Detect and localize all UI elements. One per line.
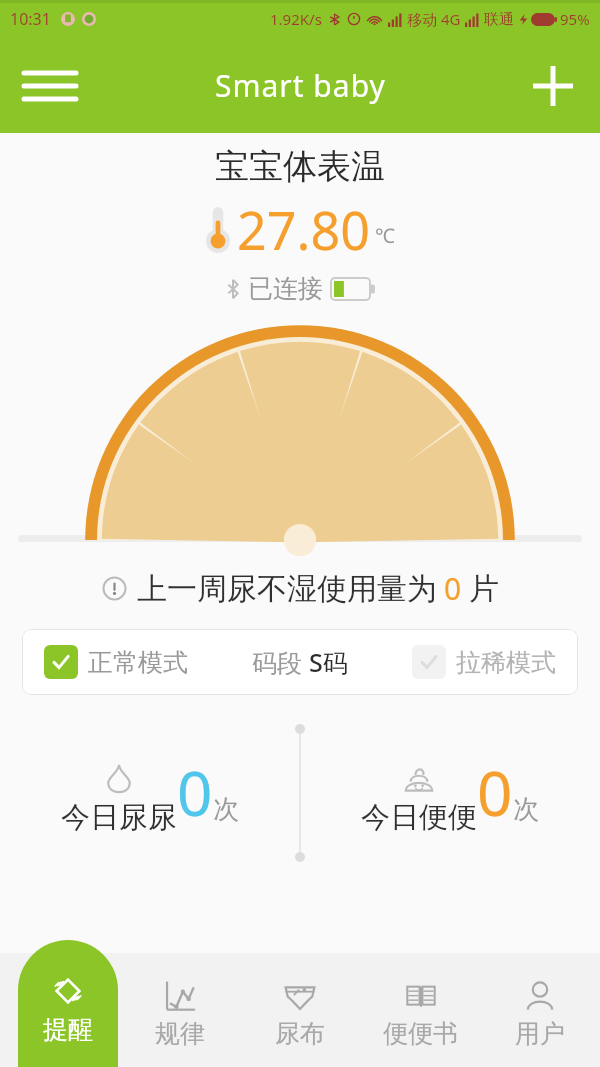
button[interactable]: 规律 [120, 953, 240, 1067]
staticText: 规律 [155, 1018, 205, 1049]
staticText: 联通 [484, 10, 514, 29]
staticText: 拉稀模式 [456, 647, 556, 678]
button[interactable]: 正常模式 [44, 645, 188, 679]
staticText: 移动 4G [407, 9, 461, 29]
staticText: 用户 [515, 1018, 565, 1049]
staticText: 今日便便 [361, 799, 477, 836]
staticText: 宝宝体表温 [215, 145, 385, 188]
staticText: 尿布 [275, 1018, 325, 1049]
staticText: 1.92K/s [270, 9, 322, 29]
staticText: 正常模式 [88, 647, 188, 678]
staticText: ℃ [375, 222, 395, 249]
staticText: 27.80 [237, 194, 370, 265]
button[interactable]: 拉稀模式 [412, 645, 556, 679]
staticText: 码段 [252, 645, 309, 679]
staticText: 上一周尿不湿使用量为 [137, 570, 437, 608]
staticText: 95% [560, 9, 590, 29]
button[interactable]: Add [522, 55, 584, 117]
button[interactable]: 便便书 [360, 953, 480, 1067]
button[interactable]: 尿布 [240, 953, 360, 1067]
staticText: S码 [309, 645, 348, 679]
button[interactable]: 今日便便 [300, 713, 600, 873]
staticText: 今日尿尿 [61, 799, 177, 836]
button[interactable]: 提醒 [18, 940, 118, 1067]
staticText: 次 [213, 793, 239, 826]
staticText: 0 [444, 568, 462, 609]
button[interactable]: 码段 [252, 645, 348, 679]
staticText: 次 [513, 793, 539, 826]
staticText: 便便书 [383, 1018, 458, 1049]
staticText: 0 [177, 750, 213, 834]
staticText: 10:31 [10, 8, 51, 30]
staticText: 提醒 [43, 1014, 93, 1045]
button[interactable]: Menu [18, 54, 82, 118]
staticText: 片 [469, 570, 499, 608]
staticText: 0 [477, 750, 513, 834]
staticText: 已连接 [248, 273, 323, 304]
button[interactable]: 今日尿尿 [0, 713, 300, 873]
staticText: Smart baby [215, 65, 386, 106]
button[interactable]: 用户 [480, 953, 600, 1067]
